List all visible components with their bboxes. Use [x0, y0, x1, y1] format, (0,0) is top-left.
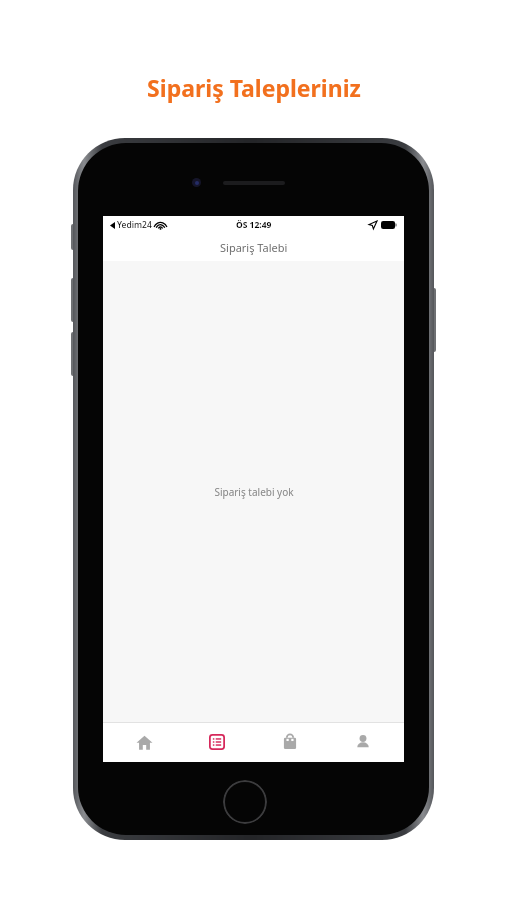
staticText: ÖS 12:49	[236, 219, 272, 231]
staticText: Sipariş Talebi	[220, 240, 288, 255]
staticText: Sipariş talebi yok	[214, 485, 294, 499]
staticText: Sipariş Talepleriniz	[147, 72, 361, 103]
button[interactable]: Home	[112, 722, 176, 762]
button[interactable]: Profile	[331, 722, 395, 762]
staticText: Yedim24	[117, 219, 152, 231]
button[interactable]: Orders	[185, 722, 249, 762]
button[interactable]: Shop	[258, 722, 322, 762]
other: Home button	[223, 780, 267, 824]
